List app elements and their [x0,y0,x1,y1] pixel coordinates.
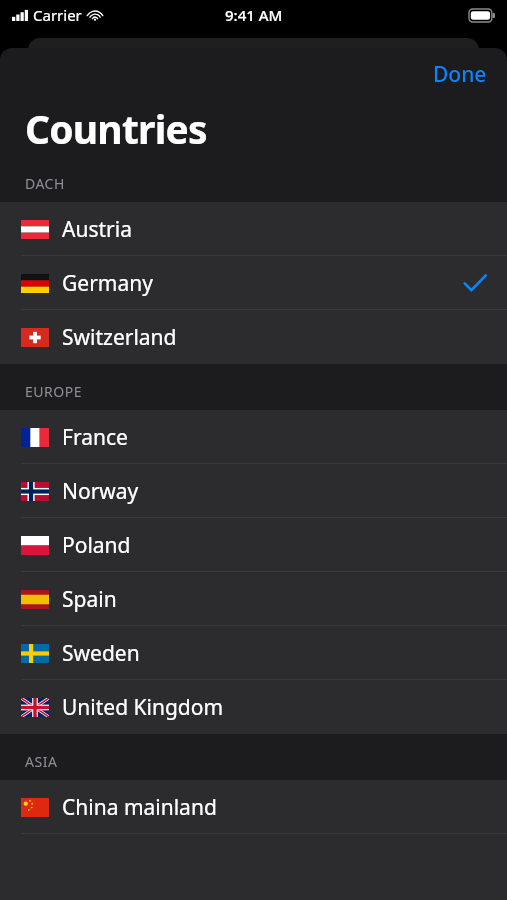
staticText: EUROPE [25,382,82,401]
button[interactable]: United Kingdom [0,680,507,734]
button[interactable]: Spain [0,572,507,626]
staticText: Norway [62,477,139,506]
button[interactable]: Germany [0,256,507,310]
button[interactable]: Poland [0,518,507,572]
button[interactable]: Austria [0,202,507,256]
staticText: DACH [25,174,65,193]
staticText: Sweden [62,639,140,668]
button[interactable]: Done [413,52,507,97]
button[interactable]: France [0,410,507,464]
staticText: Austria [62,215,132,244]
staticText: Done [433,60,487,89]
button[interactable]: Switzerland [0,310,507,364]
staticText: Switzerland [62,323,177,352]
staticText: United Kingdom [62,693,224,722]
staticText: Germany [62,269,153,298]
staticText: ASIA [25,752,58,771]
staticText: Spain [62,585,117,614]
button[interactable]: Sweden [0,626,507,680]
staticText: France [62,423,128,452]
staticText: 9:41 AM [225,5,283,25]
staticText: Countries [25,102,207,155]
button[interactable]: Norway [0,464,507,518]
button[interactable]: China mainland [0,780,507,834]
staticText: China mainland [62,793,217,822]
staticText: Poland [62,531,131,560]
staticText: Carrier [33,5,82,25]
